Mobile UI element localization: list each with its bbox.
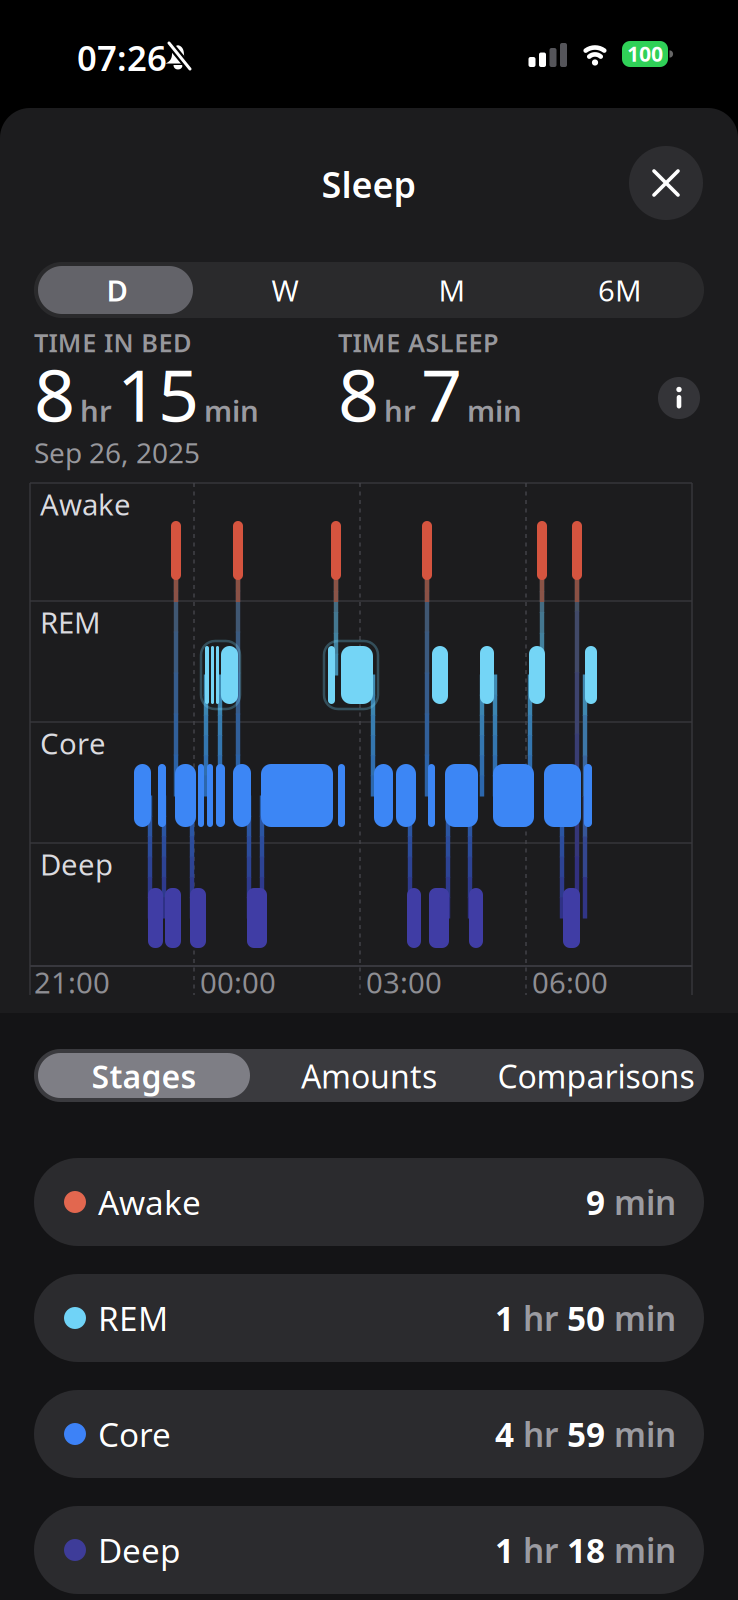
button[interactable]: Comparisons bbox=[481, 1051, 711, 1101]
staticText: Deep bbox=[40, 845, 113, 884]
staticText: 15 bbox=[117, 346, 199, 442]
staticText: hr bbox=[514, 1412, 567, 1456]
staticText: hr bbox=[514, 1528, 567, 1572]
staticText: hr bbox=[80, 391, 112, 430]
staticText: 8 bbox=[338, 346, 379, 442]
staticText: M bbox=[438, 270, 465, 309]
staticText: Deep bbox=[98, 1528, 181, 1572]
staticText: W bbox=[271, 270, 298, 309]
staticText: 18 bbox=[567, 1528, 605, 1572]
button[interactable]: REM bbox=[34, 1274, 704, 1362]
staticText: D bbox=[106, 270, 127, 309]
staticText: REM bbox=[40, 603, 101, 642]
staticText: min bbox=[605, 1180, 676, 1224]
staticText: TIME IN BED bbox=[34, 325, 192, 359]
staticText: 21:00 bbox=[34, 963, 110, 1002]
staticText: 59 bbox=[567, 1412, 605, 1456]
button[interactable]: W bbox=[205, 264, 365, 316]
button[interactable]: Close bbox=[629, 146, 703, 220]
staticText: Comparisons bbox=[497, 1055, 694, 1097]
staticText: Awake bbox=[40, 485, 131, 524]
staticText: Sep 26, 2025 bbox=[34, 434, 200, 471]
staticText: 100 bbox=[627, 39, 663, 68]
staticText: min bbox=[204, 391, 259, 430]
staticText: Core bbox=[98, 1412, 171, 1456]
staticText: TIME ASLEEP bbox=[338, 325, 499, 359]
staticText: min bbox=[467, 391, 522, 430]
staticText: min bbox=[605, 1296, 676, 1340]
staticText: Core bbox=[40, 724, 106, 763]
staticText: Awake bbox=[98, 1180, 201, 1224]
staticText: 1 bbox=[495, 1528, 514, 1572]
button[interactable]: About Sleep bbox=[658, 377, 700, 419]
staticText: 07:26 bbox=[77, 34, 167, 80]
staticText: 4 bbox=[495, 1412, 514, 1456]
staticText: 00:00 bbox=[200, 963, 276, 1002]
button[interactable]: Amounts bbox=[261, 1051, 477, 1101]
staticText: 50 bbox=[567, 1296, 605, 1340]
staticText: hr bbox=[384, 391, 416, 430]
staticText: 9 bbox=[586, 1180, 605, 1224]
staticText: 6M bbox=[598, 270, 642, 309]
staticText: Amounts bbox=[301, 1055, 437, 1097]
button[interactable]: Stages bbox=[38, 1053, 250, 1099]
staticText: 1 bbox=[495, 1296, 514, 1340]
button[interactable]: Deep bbox=[34, 1506, 704, 1594]
staticText: 03:00 bbox=[366, 963, 442, 1002]
button[interactable]: Core bbox=[34, 1390, 704, 1478]
staticText: 8 bbox=[34, 346, 75, 442]
staticText: 7 bbox=[421, 346, 462, 442]
staticText: REM bbox=[98, 1296, 168, 1340]
staticText: min bbox=[605, 1528, 676, 1572]
button[interactable]: Awake bbox=[34, 1158, 704, 1246]
staticText: Sleep bbox=[321, 160, 416, 208]
button[interactable]: D bbox=[38, 266, 196, 314]
staticText: 06:00 bbox=[532, 963, 608, 1002]
staticText: Stages bbox=[91, 1055, 196, 1097]
button[interactable]: 6M bbox=[540, 264, 700, 316]
staticText: hr bbox=[514, 1296, 567, 1340]
button[interactable]: M bbox=[372, 264, 532, 316]
staticText: min bbox=[605, 1412, 676, 1456]
